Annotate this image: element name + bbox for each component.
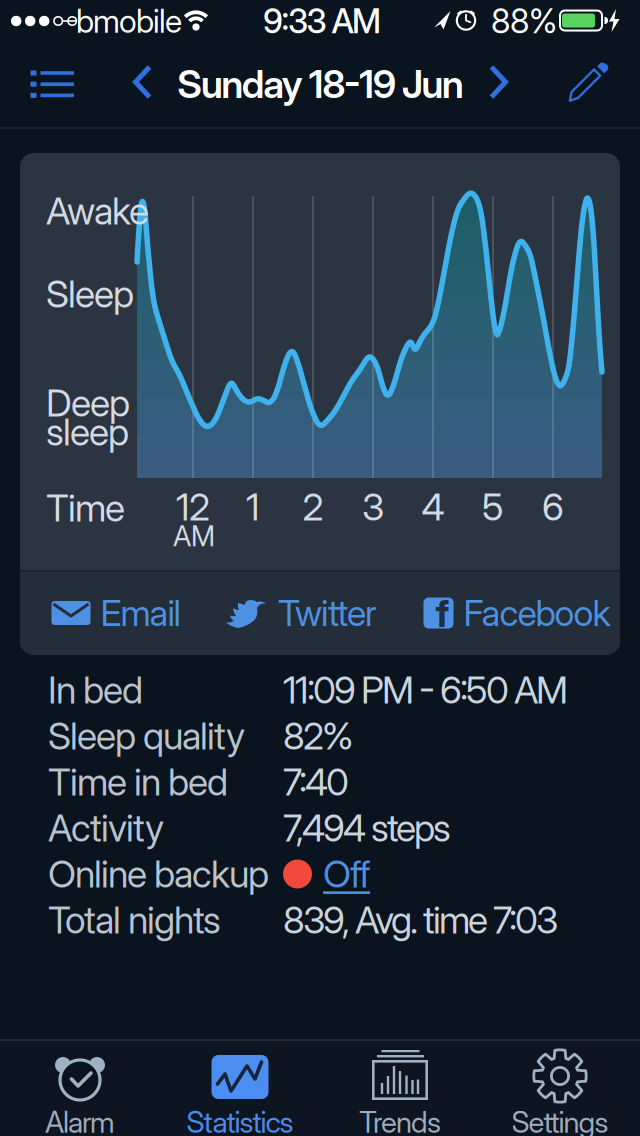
staticText: Off [323,852,370,896]
staticText: 12 [176,485,210,529]
button[interactable]: Settings [480,1040,640,1136]
staticText: Time in bed [48,760,228,804]
staticText: 7:40 [283,760,349,804]
staticText: Activity [48,806,164,850]
staticText: Online backup [48,852,269,896]
staticText: 11:09 PM - 6:50 AM [283,668,568,712]
button[interactable]: Twitter [225,592,377,634]
button[interactable]: Off [323,852,370,896]
staticText: Sleep quality [48,714,245,758]
staticText: 1 [246,485,260,529]
button[interactable]: Trends [320,1040,480,1136]
staticText: AM [173,519,215,552]
staticText: 6 [542,485,564,529]
staticText: Sunday 18-19 Jun [177,61,464,107]
staticText: Total nights [48,898,221,942]
staticText: Statistics [186,1105,293,1136]
button[interactable]: Next night [488,65,507,99]
button[interactable]: Email [51,592,180,634]
button[interactable]: Sleep notes [30,66,74,97]
staticText: Settings [511,1105,608,1136]
button[interactable]: f [423,592,610,634]
staticText: Trends [359,1105,441,1136]
staticText: 88% [491,1,557,41]
staticText: 3 [362,485,384,529]
staticText: Deep [46,381,130,425]
staticText: Facebook [463,592,610,634]
staticText: In bed [48,668,143,712]
button[interactable]: Previous night [133,65,152,99]
staticText: 4 [421,485,444,529]
staticText: Sleep [46,272,134,316]
staticText: 82% [283,714,354,758]
staticText: sleep [46,410,129,454]
button[interactable]: Alarm [0,1040,160,1136]
staticText: Email [100,592,180,634]
staticText: 839, Avg. time 7:03 [283,898,558,942]
staticText: 7,494 steps [283,806,451,850]
staticText: 2 [302,485,323,529]
staticText: bmobile [76,2,182,40]
staticText: 9:33 AM [263,1,381,41]
staticText: Alarm [45,1105,115,1136]
staticText: Time [46,486,125,530]
button[interactable]: Edit sleep note [569,61,609,102]
staticText: Awake [46,189,149,233]
staticText: f [435,591,449,635]
staticText: Twitter [278,592,377,634]
staticText: 5 [482,485,504,529]
button[interactable]: Statistics [160,1040,320,1136]
